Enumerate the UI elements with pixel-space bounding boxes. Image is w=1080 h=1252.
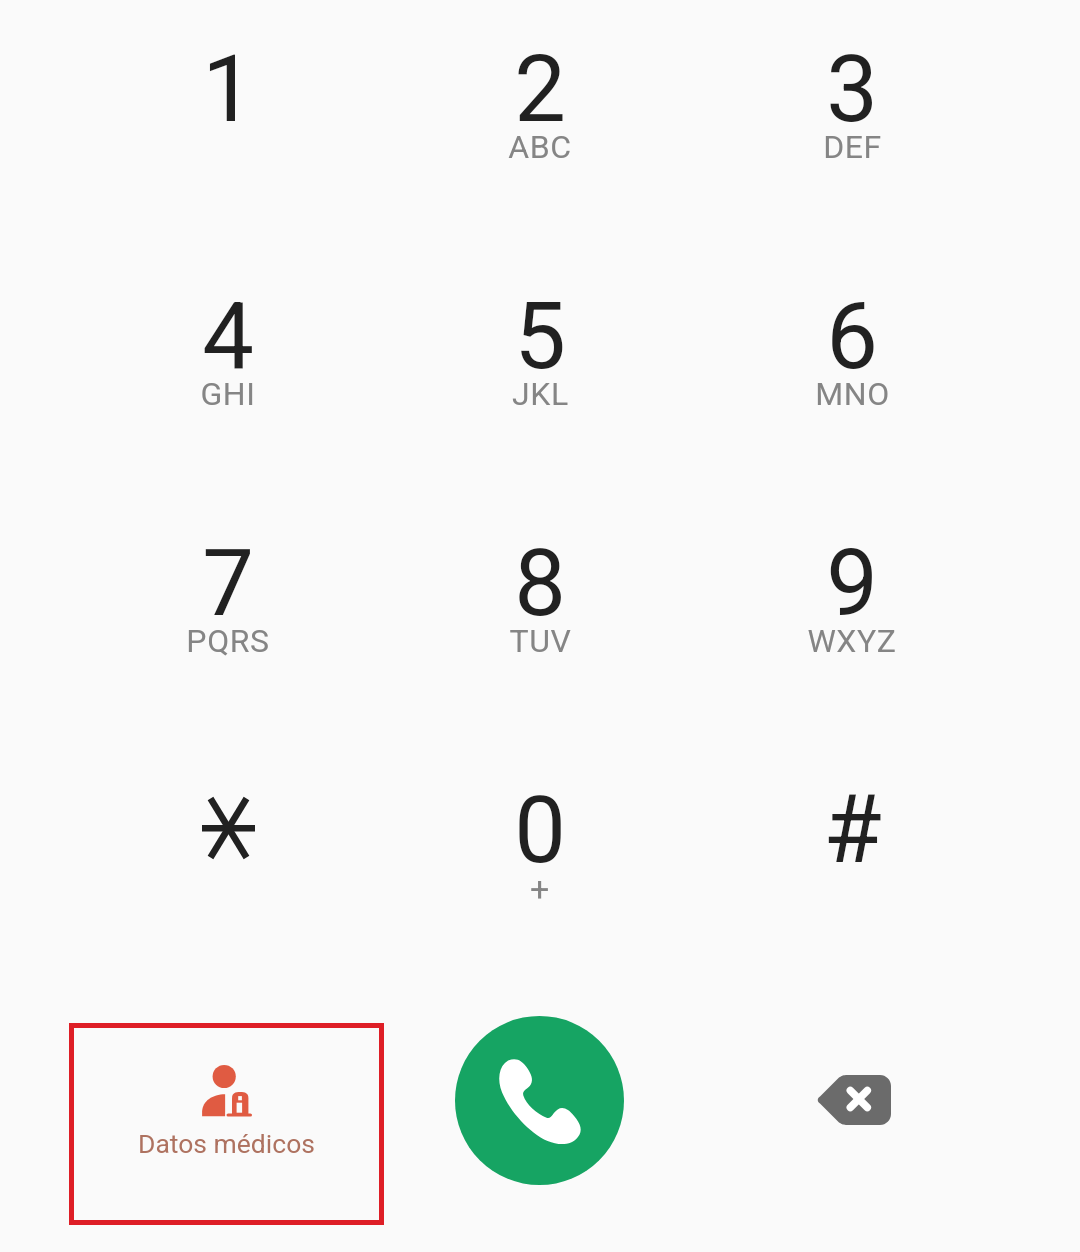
staticText: MNO <box>815 375 890 413</box>
button[interactable]: 6 <box>696 247 1008 494</box>
button[interactable]: 9 <box>696 494 1008 741</box>
staticText: JKL <box>512 375 569 413</box>
staticText: TUV <box>509 622 572 660</box>
staticText: 4 <box>202 283 254 391</box>
staticText: 8 <box>514 530 566 638</box>
button[interactable]: Backspace <box>817 1075 891 1125</box>
staticText: WXYZ <box>807 622 897 660</box>
button[interactable]: 8 <box>384 494 696 741</box>
staticText: 7 <box>202 530 254 638</box>
button[interactable]: 1 <box>72 0 384 247</box>
staticText: PQRS <box>186 622 270 660</box>
staticText: DEF <box>823 128 882 166</box>
button[interactable]: Call <box>455 1016 624 1185</box>
staticText: ABC <box>508 128 572 166</box>
button[interactable]: 4 <box>72 247 384 494</box>
staticText: 6 <box>826 283 878 391</box>
button[interactable]: 5 <box>384 247 696 494</box>
button[interactable]: 3 <box>696 0 1008 247</box>
staticText: # <box>823 774 882 885</box>
staticText: Datos médicos <box>138 1128 315 1159</box>
button[interactable]: pound <box>696 741 1008 988</box>
staticText: 1 <box>202 36 254 144</box>
staticText: 3 <box>826 36 878 144</box>
staticText: 2 <box>514 36 566 144</box>
staticText: 9 <box>826 530 878 638</box>
staticText: GHI <box>200 375 256 413</box>
staticText: + <box>530 869 550 909</box>
button[interactable]: star <box>72 741 384 988</box>
staticText: 0 <box>514 777 566 885</box>
button[interactable]: 7 <box>72 494 384 741</box>
button[interactable]: 0 <box>384 741 696 988</box>
button[interactable]: Datos médicos <box>69 1023 384 1225</box>
staticText: 5 <box>514 283 566 391</box>
button[interactable]: 2 <box>384 0 696 247</box>
